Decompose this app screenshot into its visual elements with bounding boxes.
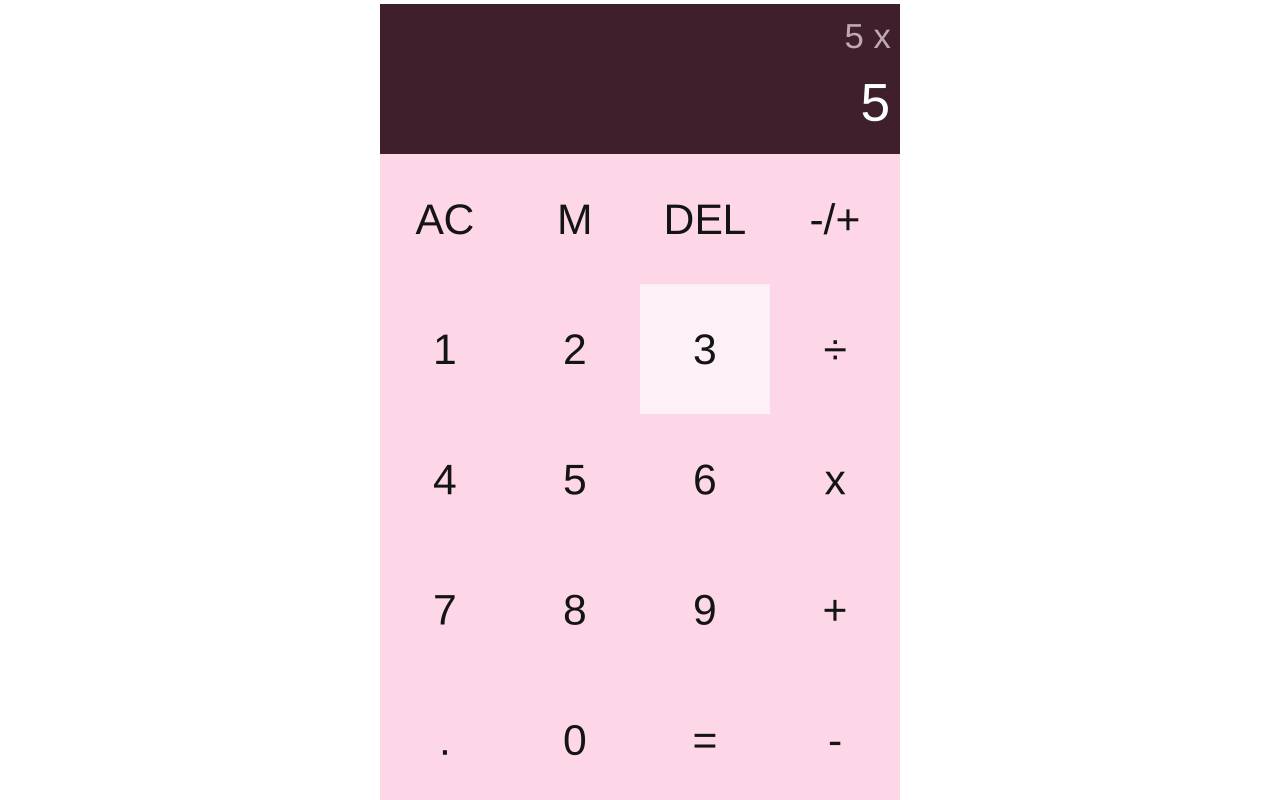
staticText: . <box>439 716 451 764</box>
staticText: 1 <box>433 325 457 373</box>
button[interactable]: 3 <box>640 284 770 414</box>
button[interactable]: Equals <box>640 675 770 800</box>
button[interactable]: 4 <box>380 414 510 545</box>
staticText: M <box>557 195 593 243</box>
button[interactable]: 5 <box>510 414 640 545</box>
staticText: 7 <box>433 586 457 634</box>
staticText: 6 <box>693 456 717 503</box>
button[interactable]: All clear <box>380 154 510 284</box>
staticText: 9 <box>693 586 717 634</box>
button[interactable]: Delete <box>640 154 770 284</box>
button[interactable]: 1 <box>380 284 510 414</box>
staticText: 8 <box>563 586 587 634</box>
button[interactable]: 8 <box>510 545 640 675</box>
staticText: 5 x <box>844 17 890 55</box>
staticText: 2 <box>563 325 587 373</box>
button[interactable]: 6 <box>640 414 770 545</box>
button[interactable]: 0 <box>510 675 640 800</box>
button[interactable]: Toggle sign <box>770 154 900 284</box>
staticText: x <box>824 456 845 503</box>
staticText: ÷ <box>823 325 846 373</box>
staticText: 4 <box>433 456 457 503</box>
staticText: + <box>822 586 847 634</box>
staticText: = <box>692 716 717 764</box>
staticText: 3 <box>693 325 717 373</box>
button[interactable]: Multiply <box>770 414 900 545</box>
button[interactable]: Subtract <box>770 675 900 800</box>
staticText: DEL <box>663 195 746 243</box>
button[interactable]: 7 <box>380 545 510 675</box>
button[interactable]: Decimal point <box>380 675 510 800</box>
staticText: - <box>828 716 842 764</box>
staticText: 0 <box>563 716 587 764</box>
button[interactable]: Memory <box>510 154 640 284</box>
staticText: -/+ <box>809 195 860 243</box>
button[interactable]: Add <box>770 545 900 675</box>
button[interactable]: Divide <box>770 284 900 414</box>
staticText: 5 <box>563 456 587 503</box>
staticText: AC <box>415 195 474 243</box>
staticText: 5 <box>860 72 890 132</box>
button[interactable]: 9 <box>640 545 770 675</box>
button[interactable]: 2 <box>510 284 640 414</box>
